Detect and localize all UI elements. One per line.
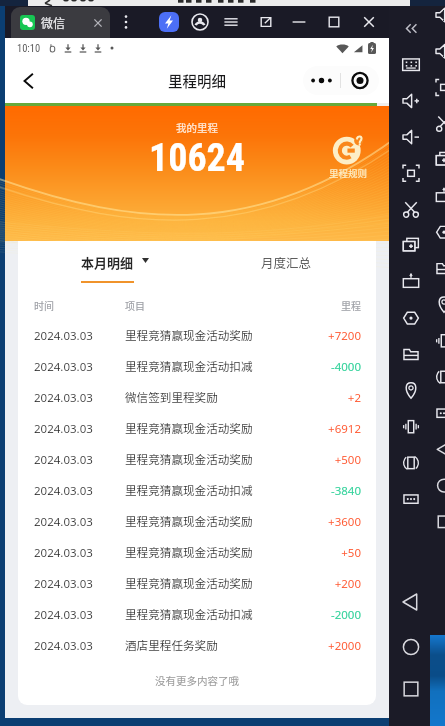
button[interactable]: Close tab	[89, 14, 107, 32]
staticText: 里程明细	[168, 70, 226, 91]
button[interactable]: 2024.03.03	[34, 320, 361, 351]
button[interactable]: Boost	[159, 12, 179, 32]
staticText: 里程竞猜赢现金活动奖励	[125, 513, 301, 530]
button[interactable]: 2024.03.03	[34, 475, 361, 506]
staticText: +3600	[301, 514, 361, 530]
button[interactable]: 2024.03.03	[34, 537, 361, 568]
staticText: 2024.03.03	[34, 421, 125, 437]
staticText: 2024.03.03	[34, 452, 125, 468]
button[interactable]: 2024.03.03	[34, 382, 361, 413]
button[interactable]: 2024.03.03	[34, 630, 361, 661]
staticText: -4000	[301, 359, 361, 375]
button[interactable]: Minimize	[289, 12, 309, 32]
button[interactable]: Maximize	[324, 12, 344, 32]
staticText: +500	[301, 452, 361, 468]
staticText: 时间	[34, 298, 125, 312]
staticText: 10624	[149, 136, 246, 181]
staticText: 里程竞猜赢现金活动奖励	[125, 544, 301, 561]
staticText: 没有更多内容了哦	[18, 673, 376, 688]
button[interactable]: 2024.03.03	[34, 413, 361, 444]
button[interactable]: 2024.03.03	[34, 568, 361, 599]
staticText: +50	[301, 545, 361, 561]
staticText: 微信签到里程奖励	[125, 389, 301, 406]
staticText: 2024.03.03	[34, 576, 125, 592]
staticText: 里程竞猜赢现金活动扣减	[125, 482, 301, 499]
button[interactable]: Menu	[221, 12, 241, 32]
button[interactable]: 2024.03.03	[34, 351, 361, 382]
button[interactable]: 月度汇总	[197, 241, 376, 289]
staticText: 里程竞猜赢现金活动扣减	[125, 358, 301, 375]
staticText: 本月明细	[81, 253, 134, 272]
button[interactable]: 微信	[11, 7, 110, 38]
staticText: 我的里程	[176, 120, 218, 135]
staticText: -2000	[301, 607, 361, 623]
button[interactable]: Account	[190, 12, 210, 32]
button[interactable]: Back	[14, 66, 44, 96]
staticText: 2024.03.03	[34, 545, 125, 561]
staticText: 里程竞猜赢现金活动扣减	[125, 606, 301, 623]
button[interactable]: More	[116, 12, 136, 32]
button[interactable]: 里程规则	[329, 133, 368, 180]
button[interactable]: 2024.03.03	[34, 506, 361, 537]
staticText: 2024.03.03	[34, 638, 125, 654]
staticText: 里程	[301, 298, 361, 312]
staticText: +2000	[301, 638, 361, 654]
staticText: 里程竞猜赢现金活动奖励	[125, 451, 301, 468]
button[interactable]: More options	[303, 66, 340, 95]
staticText: +7200	[301, 328, 361, 344]
staticText: 10:10	[17, 42, 41, 54]
staticText: -3840	[301, 483, 361, 499]
staticText: 2024.03.03	[34, 483, 125, 499]
button[interactable]: Close window	[359, 12, 379, 32]
staticText: 微信	[41, 14, 66, 31]
staticText: +6912	[301, 421, 361, 437]
staticText: 项目	[125, 298, 301, 312]
staticText: +200	[301, 576, 361, 592]
button[interactable]: Expand	[256, 12, 276, 32]
button[interactable]: 本月明细	[18, 241, 197, 289]
staticText: 里程竞猜赢现金活动奖励	[125, 575, 301, 592]
staticText: 2024.03.03	[34, 328, 125, 344]
staticText: 2024.03.03	[34, 390, 125, 406]
button[interactable]: Close mini program	[341, 66, 379, 95]
staticText: +2	[301, 390, 361, 406]
staticText: 里程竞猜赢现金活动奖励	[125, 327, 301, 344]
staticText: 酒店里程任务奖励	[125, 637, 301, 654]
button[interactable]: 2024.03.03	[34, 444, 361, 475]
staticText: 2024.03.03	[34, 359, 125, 375]
staticText: 里程竞猜赢现金活动奖励	[125, 420, 301, 437]
staticText: 月度汇总	[261, 253, 312, 271]
button[interactable]: 2024.03.03	[34, 599, 361, 630]
staticText: 2024.03.03	[34, 607, 125, 623]
staticText: 里程规则	[329, 166, 368, 180]
staticText: 2024.03.03	[34, 514, 125, 530]
